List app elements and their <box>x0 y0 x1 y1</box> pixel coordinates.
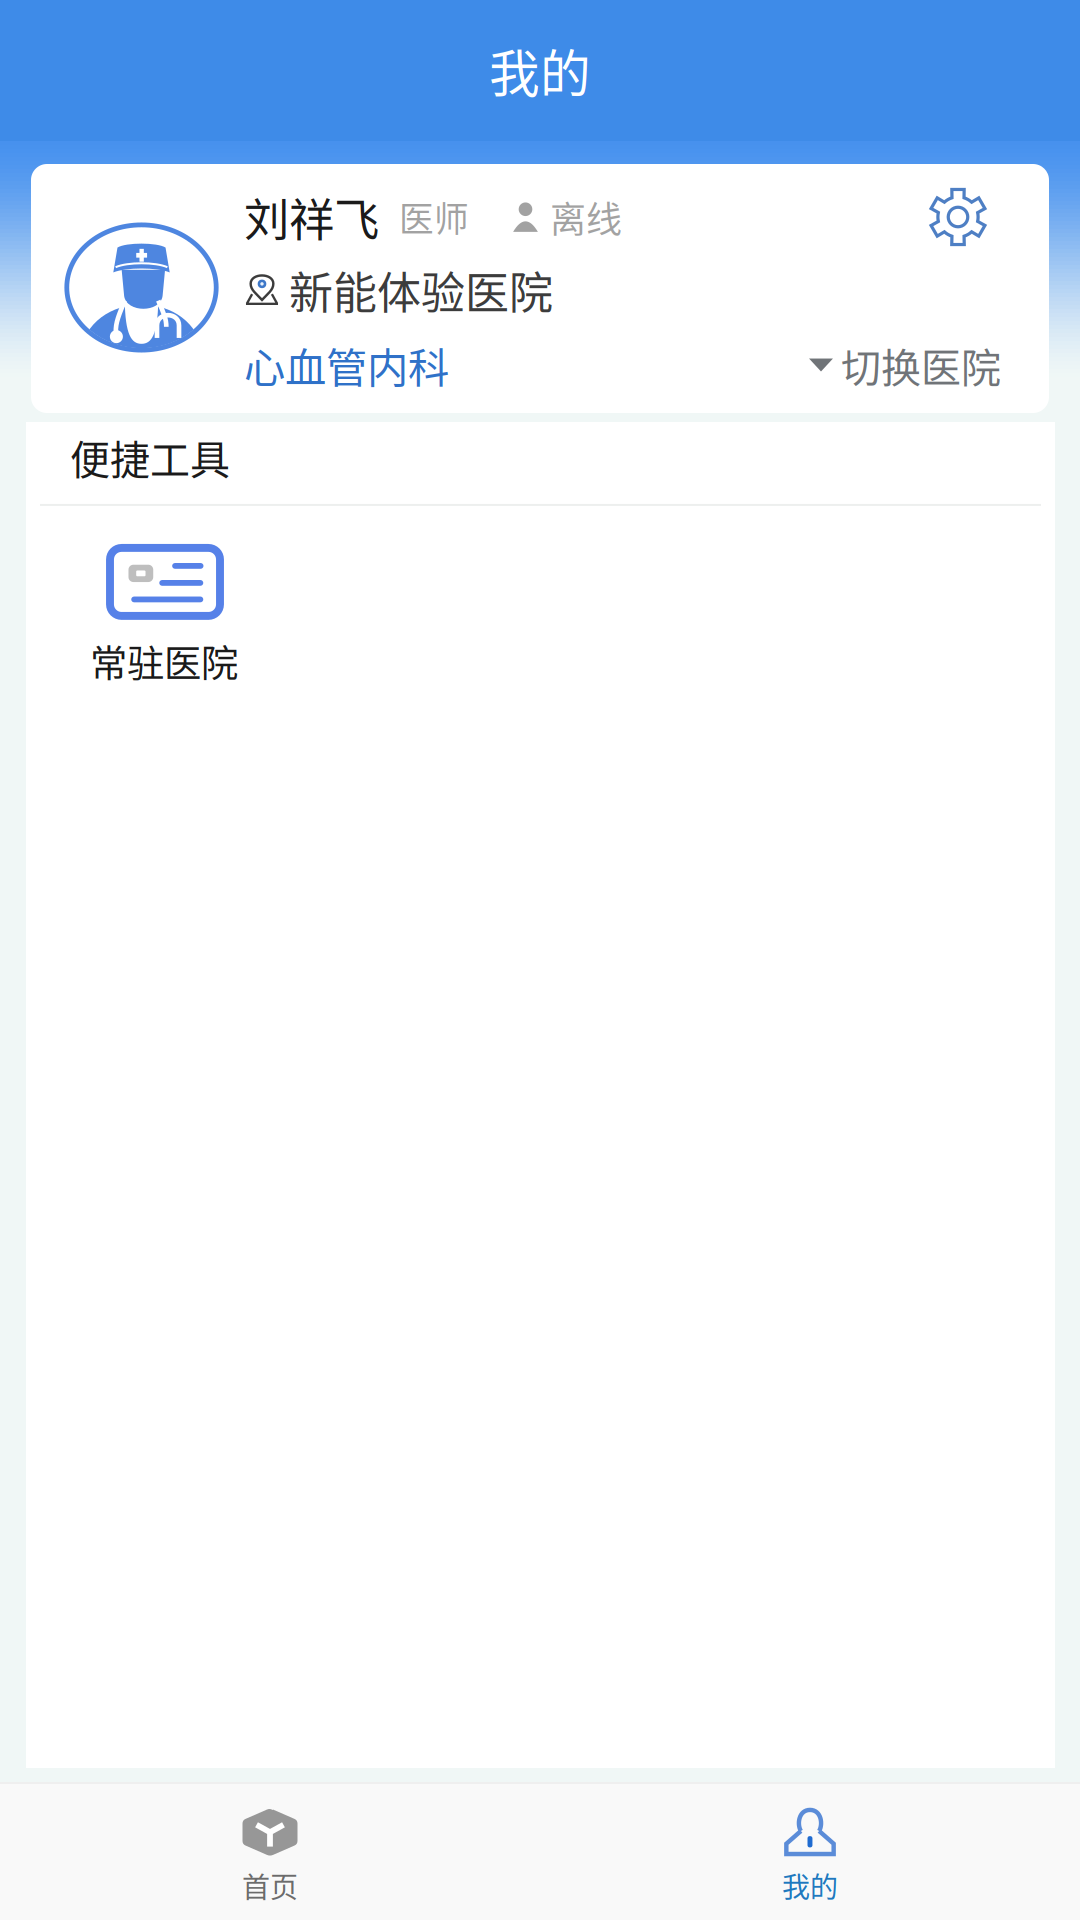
staticText: 首页 <box>242 1865 298 1906</box>
button[interactable]: 切换医院 <box>809 336 1001 394</box>
staticText: 新能体验医院 <box>289 258 553 322</box>
button[interactable]: 首页 <box>0 1785 540 1919</box>
button[interactable]: 常驻医院 <box>26 506 238 712</box>
button[interactable]: 我的 <box>540 1785 1080 1919</box>
staticText: 常驻医院 <box>90 634 238 688</box>
staticText: 刘祥飞 <box>244 184 379 250</box>
button[interactable]: 刘祥飞 <box>31 164 1049 413</box>
staticText: 我的 <box>489 34 591 107</box>
staticText: 我的 <box>782 1865 838 1906</box>
staticText: 离线 <box>550 191 622 243</box>
staticText: 心血管内科 <box>244 335 449 395</box>
staticText: 便捷工具 <box>70 428 230 486</box>
staticText: 医师 <box>399 192 469 242</box>
staticText: 切换医院 <box>841 336 1001 394</box>
